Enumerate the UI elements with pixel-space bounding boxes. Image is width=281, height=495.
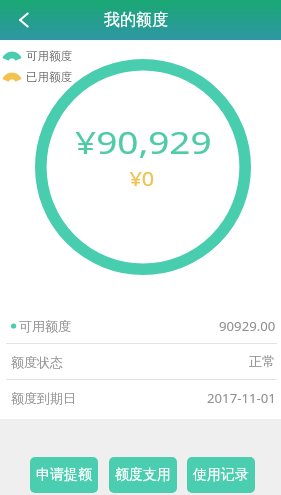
button[interactable]: 可用额度	[0, 308, 281, 343]
staticText: 我的额度	[104, 10, 168, 30]
staticText: 90929.00	[219, 317, 276, 335]
button[interactable]: 使用记录	[187, 457, 255, 493]
staticText: ¥90,929	[75, 121, 212, 163]
staticText: 使用记录	[193, 466, 249, 484]
staticText: 额度状态	[11, 354, 63, 370]
button[interactable]: 额度到期日	[0, 380, 281, 415]
staticText: 已用额度	[26, 70, 72, 84]
staticText: 申请提额	[36, 466, 92, 484]
staticText: 2017-11-01	[207, 389, 276, 407]
staticText: 可用额度	[26, 49, 72, 63]
button[interactable]: 申请提额	[30, 457, 98, 493]
button[interactable]: Back	[4, 1, 42, 39]
button[interactable]: 额度状态	[0, 344, 281, 379]
staticText: 额度支用	[115, 466, 171, 484]
staticText: 正常	[249, 353, 276, 370]
staticText: ¥0	[129, 166, 155, 192]
staticText: 额度到期日	[11, 390, 76, 406]
button[interactable]: 额度支用	[109, 457, 177, 493]
staticText: 可用额度	[19, 318, 71, 334]
